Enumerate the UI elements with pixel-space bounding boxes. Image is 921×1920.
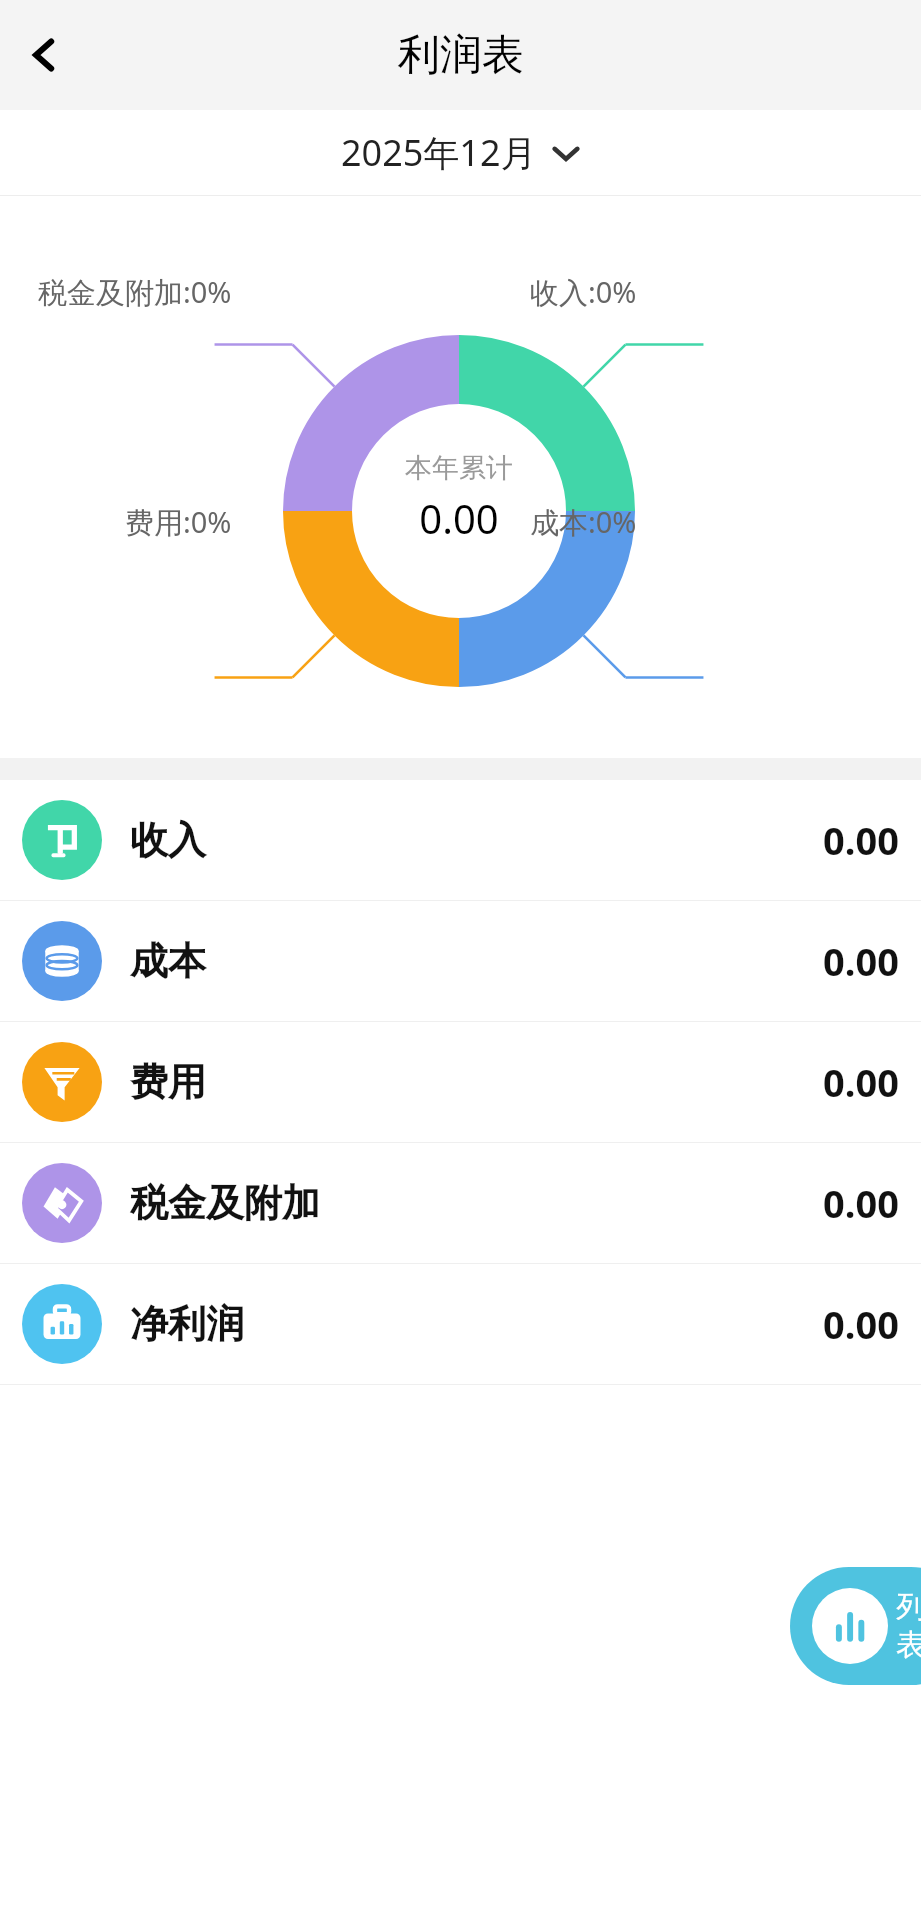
button[interactable]: 收入: [0, 780, 921, 900]
staticText: 0.00: [823, 935, 899, 987]
staticText: 费用: [130, 1058, 206, 1106]
button[interactable]: 税金及附加: [0, 1143, 921, 1263]
staticText: 收入:0%: [530, 272, 637, 312]
staticText: 利润表: [398, 29, 524, 82]
staticText: 0.00: [823, 1056, 899, 1108]
staticText: 0.00: [419, 491, 499, 545]
staticText: 费用:0%: [125, 502, 232, 542]
staticText: 成本: [130, 937, 206, 985]
staticText: 成本:0%: [530, 502, 637, 542]
button[interactable]: 费用: [0, 1022, 921, 1142]
staticText: 0.00: [823, 1177, 899, 1229]
button[interactable]: 返回: [8, 19, 80, 91]
button[interactable]: 净利润: [0, 1264, 921, 1384]
staticText: 表: [896, 1626, 921, 1664]
staticText: 0.00: [823, 1298, 899, 1350]
staticText: 2025年12月: [341, 128, 537, 177]
button[interactable]: 2025年12月: [0, 110, 921, 195]
button[interactable]: 列表: [790, 1567, 921, 1685]
staticText: 列: [896, 1588, 921, 1626]
button[interactable]: 成本: [0, 901, 921, 1021]
staticText: 本年累计: [405, 451, 513, 485]
staticText: 净利润: [130, 1300, 244, 1348]
staticText: 税金及附加:0%: [38, 272, 232, 312]
staticText: 税金及附加: [130, 1179, 320, 1227]
staticText: 0.00: [823, 814, 899, 866]
staticText: 收入: [130, 816, 206, 864]
